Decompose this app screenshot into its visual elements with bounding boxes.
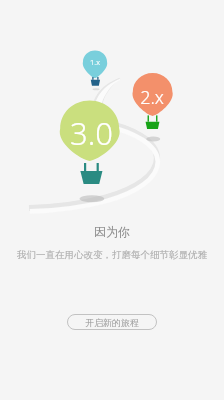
- staticText: 我们一直在用心改变，打磨每个细节彰显优雅: [17, 249, 207, 261]
- staticText: 1.x: [75, 57, 115, 67]
- staticText: 因为你: [94, 224, 130, 239]
- staticText: 3.0: [61, 112, 122, 154]
- button[interactable]: 开启新的旅程: [67, 314, 157, 330]
- staticText: 2.x: [132, 85, 172, 110]
- staticText: 开启新的旅程: [85, 317, 139, 328]
